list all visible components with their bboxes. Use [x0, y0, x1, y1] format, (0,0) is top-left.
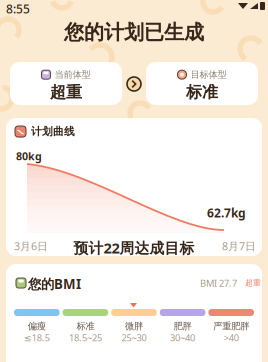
staticText: 您的计划已生成 — [64, 20, 204, 45]
staticText: 62.7kg — [207, 205, 246, 221]
staticText: BMI 27.7 — [200, 277, 237, 289]
staticText: 3月6日 — [14, 239, 48, 253]
staticText: 80kg — [16, 149, 42, 163]
staticText: 8:55 — [6, 1, 30, 17]
staticText: 超重 — [245, 278, 261, 288]
staticText: 超重 — [50, 82, 82, 102]
staticText: 8月7日 — [222, 239, 256, 253]
staticText: 目标体型 — [190, 69, 226, 80]
staticText: ≤18.5 — [24, 331, 50, 344]
button[interactable]: 目标体型 — [146, 62, 258, 105]
staticText: 标准 — [186, 82, 218, 102]
staticText: 偏瘦 — [28, 320, 46, 332]
staticText: 微胖 — [125, 320, 143, 332]
staticText: 计划曲线 — [31, 125, 75, 138]
button[interactable]: 当前体型 — [10, 62, 122, 105]
staticText: 您的BMI — [28, 275, 81, 293]
staticText: 预计22周达成目标 — [73, 238, 194, 257]
staticText: 肥胖 — [174, 320, 192, 332]
button[interactable]: 查看详情 — [127, 77, 141, 91]
staticText: 标准 — [76, 320, 94, 332]
staticText: 30~40 — [170, 331, 195, 344]
staticText: 当前体型 — [54, 69, 90, 80]
staticText: 25~30 — [121, 331, 146, 344]
staticText: 严重肥胖 — [213, 320, 249, 332]
staticText: >40 — [224, 331, 239, 344]
staticText: 18.5~25 — [69, 331, 102, 344]
